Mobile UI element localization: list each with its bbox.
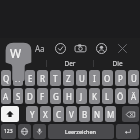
staticText: D	[27, 91, 33, 102]
staticText: Aa	[35, 43, 45, 54]
button[interactable]: Voice input	[33, 124, 46, 139]
button[interactable]: Stickers	[52, 40, 68, 56]
button[interactable]: V	[66, 106, 77, 122]
button[interactable]: Avatar	[93, 40, 109, 56]
staticText: Die	[112, 59, 123, 68]
button[interactable]: X	[40, 106, 51, 122]
button[interactable]: Y	[26, 106, 38, 122]
button[interactable]: L	[102, 88, 113, 104]
staticText: W	[14, 73, 22, 84]
staticText: X	[43, 109, 48, 120]
button[interactable]: G	[50, 88, 61, 104]
button[interactable]: Close	[114, 40, 130, 56]
button[interactable]: T	[50, 70, 61, 86]
staticText: B	[82, 109, 88, 120]
button[interactable]	[0, 57, 46, 70]
button[interactable]: F	[37, 88, 48, 104]
button[interactable]: S	[13, 88, 23, 104]
button[interactable]: 123	[1, 124, 16, 139]
staticText: R	[40, 73, 45, 84]
button[interactable]: Text formatting	[31, 40, 47, 56]
staticText: P	[118, 73, 123, 84]
button[interactable]: B	[79, 106, 90, 122]
staticText: E	[28, 73, 33, 84]
staticText: J	[80, 91, 83, 102]
staticText: F	[40, 91, 45, 102]
button[interactable]: C	[53, 106, 64, 122]
button[interactable]: Shift	[1, 106, 19, 122]
button[interactable]: R	[37, 70, 48, 86]
button[interactable]: Backspace	[122, 106, 139, 122]
button[interactable]: I	[89, 70, 100, 86]
button[interactable]: M	[105, 106, 116, 122]
staticText: Der	[64, 59, 76, 68]
staticText: 123	[4, 128, 13, 135]
button[interactable]: Keyboard layouts	[10, 40, 26, 56]
button[interactable]: Enter	[116, 124, 139, 139]
staticText: G	[53, 91, 59, 102]
staticText: N	[94, 109, 101, 120]
staticText: Ä	[131, 91, 137, 102]
button[interactable]: E	[25, 70, 35, 86]
staticText: O	[104, 73, 111, 84]
button[interactable]: Leerzeichen	[48, 124, 114, 139]
staticText: Z	[66, 73, 71, 84]
button[interactable]: U	[76, 70, 87, 86]
button[interactable]: Die	[94, 57, 140, 70]
button[interactable]: Q	[1, 70, 11, 86]
staticText: S	[16, 91, 21, 102]
staticText: A	[3, 91, 9, 102]
staticText: H	[66, 91, 72, 102]
staticText: U	[79, 73, 85, 84]
button[interactable]: Ö	[115, 88, 126, 104]
staticText: I	[93, 73, 96, 84]
staticText: T	[53, 73, 58, 84]
staticText: Leerzeichen	[65, 128, 97, 135]
button[interactable]: Der	[47, 57, 93, 70]
staticText: W	[10, 45, 22, 61]
staticText: C	[56, 109, 62, 120]
button[interactable]: A	[1, 88, 11, 104]
staticText: K	[92, 91, 97, 102]
staticText: L	[105, 91, 110, 102]
button[interactable]: K	[89, 88, 100, 104]
button[interactable]: P	[115, 70, 126, 86]
staticText: Y	[30, 109, 35, 120]
button[interactable]: Change language	[18, 124, 31, 139]
staticText: Ö	[117, 91, 124, 102]
button[interactable]: W	[13, 70, 23, 86]
button[interactable]: N	[92, 106, 103, 122]
button[interactable]: J	[76, 88, 87, 104]
staticText: Ü	[131, 73, 137, 84]
button[interactable]: O	[102, 70, 113, 86]
button[interactable]: Ä	[128, 88, 139, 104]
button[interactable]: H	[63, 88, 74, 104]
button[interactable]: Ü	[128, 70, 139, 86]
staticText: Q	[3, 73, 10, 84]
staticText: V	[69, 109, 74, 120]
button[interactable]: Z	[63, 70, 74, 86]
staticText: M	[107, 109, 115, 120]
button[interactable]: D	[25, 88, 35, 104]
button[interactable]: Camera	[72, 40, 88, 56]
